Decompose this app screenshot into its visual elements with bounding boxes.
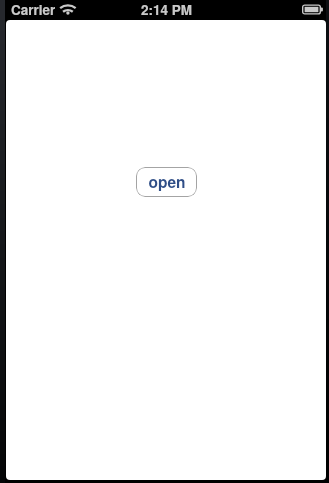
staticText: Carrier	[11, 0, 56, 19]
staticText: open	[148, 171, 186, 193]
staticText: 2:14 PM	[141, 0, 193, 19]
other: Wi-Fi signal	[59, 0, 79, 20]
other: Battery level	[302, 4, 323, 15]
button[interactable]: open	[136, 167, 197, 197]
